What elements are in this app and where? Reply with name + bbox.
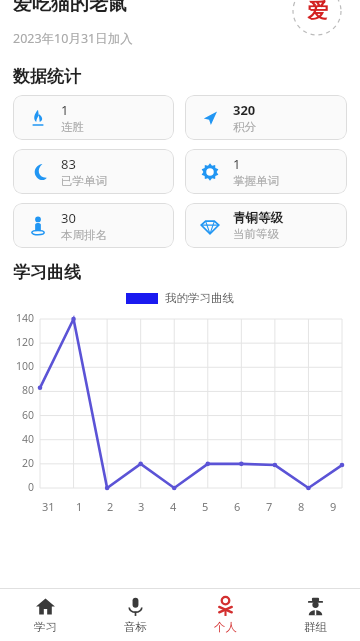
staticText: 7 [266, 499, 273, 514]
staticText: 已学单词 [61, 174, 107, 188]
staticText: 30 [61, 209, 76, 227]
button[interactable]: 30 [13, 203, 174, 248]
button[interactable]: 1 [185, 149, 347, 194]
button[interactable]: 83 [13, 149, 174, 194]
staticText: 1 [76, 499, 83, 514]
staticText: 连胜 [61, 120, 84, 134]
staticText: 100 [15, 359, 34, 373]
staticText: 青铜等级 [233, 210, 283, 226]
staticText: 2023年10月31日加入 [13, 30, 133, 47]
staticText: 4 [170, 499, 177, 514]
staticText: 音标 [124, 620, 147, 634]
staticText: 6 [234, 499, 241, 514]
staticText: 120 [15, 335, 34, 349]
staticText: 本周排名 [61, 228, 107, 242]
staticText: 爱吃猫的老鼠 [13, 0, 127, 16]
staticText: 5 [202, 499, 209, 514]
button[interactable]: 群组 [270, 589, 360, 641]
staticText: 1 [61, 101, 69, 119]
staticText: 83 [61, 155, 76, 173]
staticText: 320 [233, 101, 256, 119]
staticText: 3 [138, 499, 145, 514]
button[interactable]: 学习 [0, 589, 90, 641]
staticText: 1 [233, 155, 241, 173]
staticText: 80 [21, 383, 34, 397]
staticText: 31 [42, 499, 55, 514]
staticText: 群组 [304, 620, 327, 634]
staticText: 我的学习曲线 [165, 291, 234, 305]
staticText: 60 [21, 408, 34, 422]
button[interactable]: 320 [185, 95, 347, 140]
staticText: 学习曲线 [13, 262, 81, 283]
staticText: 当前等级 [233, 227, 279, 241]
button[interactable]: 音标 [90, 589, 180, 641]
staticText: 掌握单词 [233, 174, 279, 188]
staticText: 0 [27, 480, 34, 494]
staticText: 20 [21, 456, 34, 470]
staticText: 40 [21, 432, 34, 446]
button[interactable]: 个人 [180, 589, 270, 641]
staticText: 8 [298, 499, 305, 514]
staticText: 2 [107, 499, 114, 514]
staticText: 个人 [214, 620, 237, 634]
button[interactable]: 青铜等级 [185, 203, 347, 248]
staticText: 9 [330, 499, 337, 514]
button[interactable]: 1 [13, 95, 174, 140]
staticText: 爱 [307, 0, 328, 24]
staticText: 学习 [34, 620, 57, 634]
staticText: 积分 [233, 120, 256, 134]
staticText: 140 [15, 311, 34, 325]
button[interactable]: 头像 [292, 0, 342, 36]
staticText: 数据统计 [13, 66, 81, 87]
